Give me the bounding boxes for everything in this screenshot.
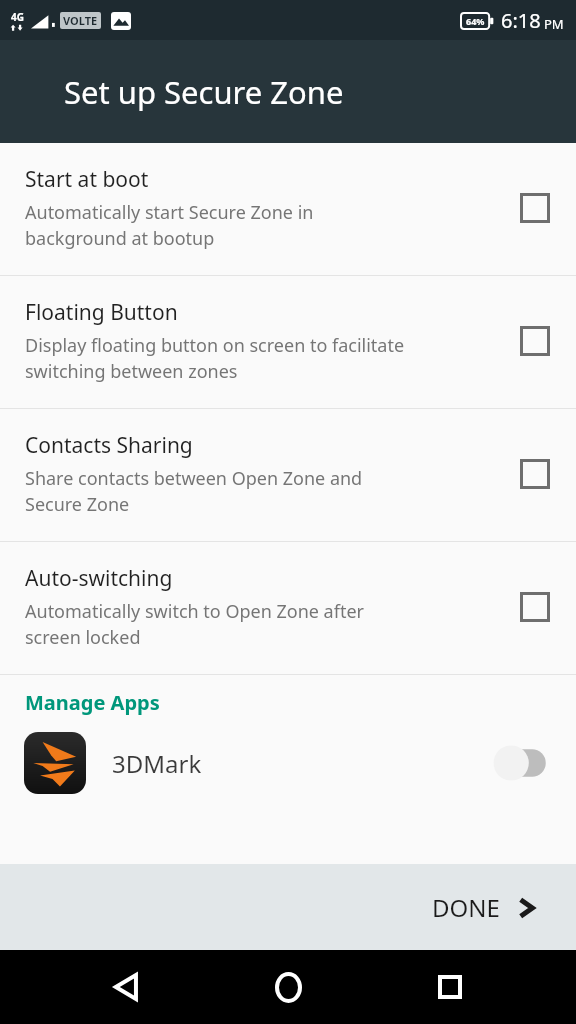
staticText: Floating Button — [25, 298, 178, 327]
button[interactable]: Back — [92, 952, 162, 1022]
button[interactable]: Recent apps — [415, 952, 485, 1022]
button[interactable]: Checkbox, unchecked — [520, 592, 550, 622]
button[interactable]: Home — [253, 952, 323, 1022]
staticText: Automatically switch to Open Zone after … — [25, 599, 364, 650]
button[interactable]: DONE — [424, 883, 544, 932]
button[interactable]: Start at boot — [0, 143, 576, 276]
staticText: Automatically start Secure Zone in backg… — [25, 200, 314, 251]
staticText: Auto-switching — [25, 564, 173, 593]
button[interactable]: Contacts Sharing — [0, 409, 576, 542]
button[interactable]: 3DMark — [24, 732, 556, 794]
staticText: 64% — [466, 15, 485, 27]
staticText: Contacts Sharing — [25, 431, 193, 460]
staticText: VOLTE — [63, 13, 98, 28]
button[interactable]: Auto-switching — [0, 542, 576, 675]
staticText: Display floating button on screen to fac… — [25, 333, 405, 384]
staticText: 6:18 — [501, 7, 541, 34]
staticText: Set up Secure Zone — [64, 71, 344, 113]
button[interactable]: Toggle 3DMark — [492, 741, 556, 785]
staticText: Start at boot — [25, 165, 149, 194]
staticText: DONE — [432, 891, 500, 924]
staticText: Share contacts between Open Zone and Sec… — [25, 466, 363, 517]
button[interactable]: Floating Button — [0, 276, 576, 409]
button[interactable]: Checkbox, unchecked — [520, 459, 550, 489]
button[interactable]: Manage Apps — [25, 689, 160, 716]
staticText: PM — [544, 15, 564, 33]
button[interactable]: Checkbox, unchecked — [520, 326, 550, 356]
button[interactable]: Checkbox, unchecked — [520, 193, 550, 223]
staticText: 3DMark — [112, 747, 492, 780]
staticText: 4G — [11, 10, 24, 24]
